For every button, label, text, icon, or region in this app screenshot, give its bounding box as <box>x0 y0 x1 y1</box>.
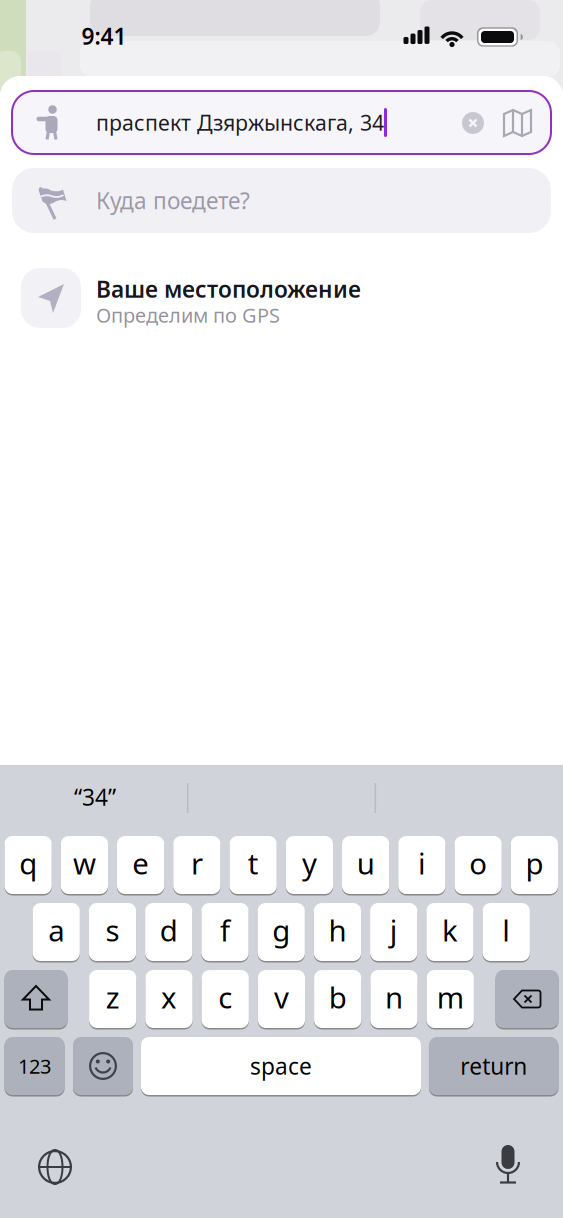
staticText: m <box>437 977 464 1016</box>
button[interactable]: l <box>0 0 563 1218</box>
button[interactable]: праспект Дзяржынскага, 34 <box>0 0 563 1218</box>
staticText: a <box>48 910 64 949</box>
staticText: s <box>105 910 119 949</box>
button[interactable]: x <box>0 0 563 1218</box>
staticText: Куда поедете? <box>96 185 250 215</box>
staticText: p <box>525 843 543 882</box>
staticText: u <box>357 843 375 882</box>
staticText: g <box>272 910 290 949</box>
button[interactable]: u <box>0 0 563 1218</box>
staticText: w <box>73 843 96 882</box>
staticText: t <box>248 843 259 882</box>
button[interactable] <box>0 0 563 1218</box>
staticText: d <box>160 910 178 949</box>
staticText: q <box>19 843 37 882</box>
staticText: 123 <box>18 1053 51 1079</box>
button[interactable] <box>0 0 563 1218</box>
button[interactable]: f <box>0 0 563 1218</box>
staticText: v <box>274 977 289 1016</box>
button[interactable] <box>0 0 563 1218</box>
staticText: e <box>132 843 149 882</box>
button[interactable] <box>0 0 563 1218</box>
staticText: f <box>220 910 230 949</box>
button[interactable]: o <box>0 0 563 1218</box>
staticText: “34” <box>74 782 116 812</box>
button[interactable]: v <box>0 0 563 1218</box>
button[interactable]: n <box>0 0 563 1218</box>
button[interactable]: k <box>0 0 563 1218</box>
button[interactable]: 123 <box>0 0 563 1218</box>
button[interactable]: s <box>0 0 563 1218</box>
button[interactable]: t <box>0 0 563 1218</box>
button[interactable]: Куда поедете? <box>0 0 563 1218</box>
staticText: праспект Дзяржынскага, 34 <box>96 108 384 137</box>
staticText: r <box>191 843 203 882</box>
button[interactable]: j <box>0 0 563 1218</box>
button[interactable]: r <box>0 0 563 1218</box>
button[interactable]: h <box>0 0 563 1218</box>
staticText: h <box>328 910 346 949</box>
staticText: return <box>460 1051 527 1081</box>
staticText: c <box>218 977 232 1016</box>
button[interactable]: c <box>0 0 563 1218</box>
staticText: b <box>329 977 347 1016</box>
staticText: Ваше местоположение <box>96 274 361 304</box>
button[interactable]: a <box>0 0 563 1218</box>
staticText: x <box>161 977 177 1016</box>
button[interactable]: w <box>0 0 563 1218</box>
button[interactable]: p <box>0 0 563 1218</box>
button[interactable] <box>0 0 563 1218</box>
staticText: l <box>502 910 510 949</box>
button[interactable]: “34” <box>3 766 187 828</box>
button[interactable]: i <box>0 0 563 1218</box>
staticText: n <box>385 977 403 1016</box>
button[interactable]: return <box>0 0 563 1218</box>
staticText: y <box>302 843 317 882</box>
button[interactable]: e <box>0 0 563 1218</box>
button[interactable]: m <box>0 0 563 1218</box>
button[interactable]: Ваше местоположение <box>0 0 563 1218</box>
staticText: space <box>250 1051 312 1081</box>
button[interactable] <box>0 0 563 1218</box>
button[interactable]: q <box>0 0 563 1218</box>
staticText: i <box>418 843 426 882</box>
button[interactable]: z <box>0 0 563 1218</box>
button[interactable]: space <box>0 0 563 1218</box>
button[interactable]: y <box>0 0 563 1218</box>
button[interactable]: b <box>0 0 563 1218</box>
staticText: k <box>442 910 458 949</box>
staticText: j <box>390 910 398 949</box>
button[interactable] <box>0 0 563 1218</box>
staticText: 9:41 <box>81 21 126 51</box>
staticText: o <box>469 843 487 882</box>
button[interactable]: d <box>0 0 563 1218</box>
staticText: z <box>106 977 120 1016</box>
button[interactable]: g <box>0 0 563 1218</box>
staticText: Определим по GPS <box>96 302 280 328</box>
